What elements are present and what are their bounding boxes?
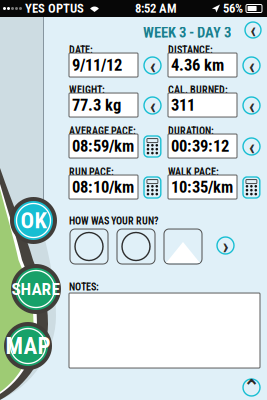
button[interactable]: SHARE [11, 264, 61, 314]
staticText: SHARE [11, 279, 60, 299]
staticText: DATE: [69, 44, 93, 56]
staticText: ‹ [248, 52, 254, 79]
staticText: ‹ [250, 17, 256, 42]
staticText: 4.36 km [171, 55, 224, 75]
staticText: ‹ [248, 133, 254, 160]
staticText: 00:39:12 [171, 136, 229, 156]
button[interactable]: 77.3 kg [69, 93, 138, 117]
button[interactable]: 00:39:12 [168, 134, 237, 158]
staticText: WEEK 3 - DAY 3 [143, 24, 231, 41]
button[interactable]: Mood option [70, 229, 108, 264]
staticText: 77.3 kg [72, 95, 121, 115]
staticText: 9/11/12 [72, 55, 122, 75]
button[interactable]: 4.36 km [168, 53, 237, 77]
staticText: ‹ [149, 52, 155, 79]
button[interactable]: 10:35/km [168, 175, 237, 199]
button[interactable]: 311 [168, 93, 237, 117]
button[interactable]: Edit [144, 97, 161, 114]
button[interactable] [69, 293, 260, 368]
staticText: NOTES: [69, 281, 99, 293]
staticText: › [222, 232, 228, 259]
button[interactable]: Edit [245, 22, 261, 38]
button[interactable]: Calculator [144, 177, 161, 198]
staticText: RUN PACE: [69, 166, 114, 178]
staticText: ‹ [149, 92, 155, 119]
staticText: HOW WAS YOUR RUN? [69, 215, 159, 227]
button[interactable]: Edit [243, 379, 260, 396]
staticText: ‹ [248, 92, 254, 119]
button[interactable]: Edit [243, 57, 260, 74]
button[interactable]: Edit [243, 138, 260, 155]
staticText: OK [20, 207, 46, 234]
staticText: DURATION: [168, 125, 214, 137]
staticText: YES OPTUS [25, 1, 84, 16]
staticText: ⌃ [243, 374, 260, 400]
staticText: 08:59/km [72, 136, 134, 156]
staticText: WALK PACE: [168, 166, 219, 178]
staticText: 08:10/km [72, 177, 134, 197]
staticText: CAL. BURNED: [168, 84, 228, 96]
button[interactable]: Calculator [243, 177, 260, 198]
staticText: AVERAGE PACE: [69, 125, 136, 137]
button[interactable]: OK [10, 197, 57, 244]
staticText: 8:52 AM [135, 1, 177, 16]
staticText: 10:35/km [171, 177, 233, 197]
staticText: MAP [5, 332, 50, 359]
staticText: WEIGHT: [69, 84, 105, 96]
button[interactable]: Edit [144, 57, 161, 74]
button[interactable]: MAP [4, 322, 52, 370]
button[interactable]: Mood option [117, 229, 155, 264]
button[interactable]: Calculator [144, 136, 161, 157]
button[interactable]: 08:59/km [69, 134, 138, 158]
button[interactable]: Mood option [164, 229, 202, 264]
button[interactable]: Edit [243, 97, 260, 114]
button[interactable]: 9/11/12 [69, 53, 138, 77]
staticText: DISTANCE: [168, 44, 213, 56]
staticText: 311 [171, 95, 195, 115]
button[interactable]: 08:10/km [69, 175, 138, 199]
staticText: 56% [223, 1, 243, 16]
button[interactable]: Edit [217, 237, 234, 254]
